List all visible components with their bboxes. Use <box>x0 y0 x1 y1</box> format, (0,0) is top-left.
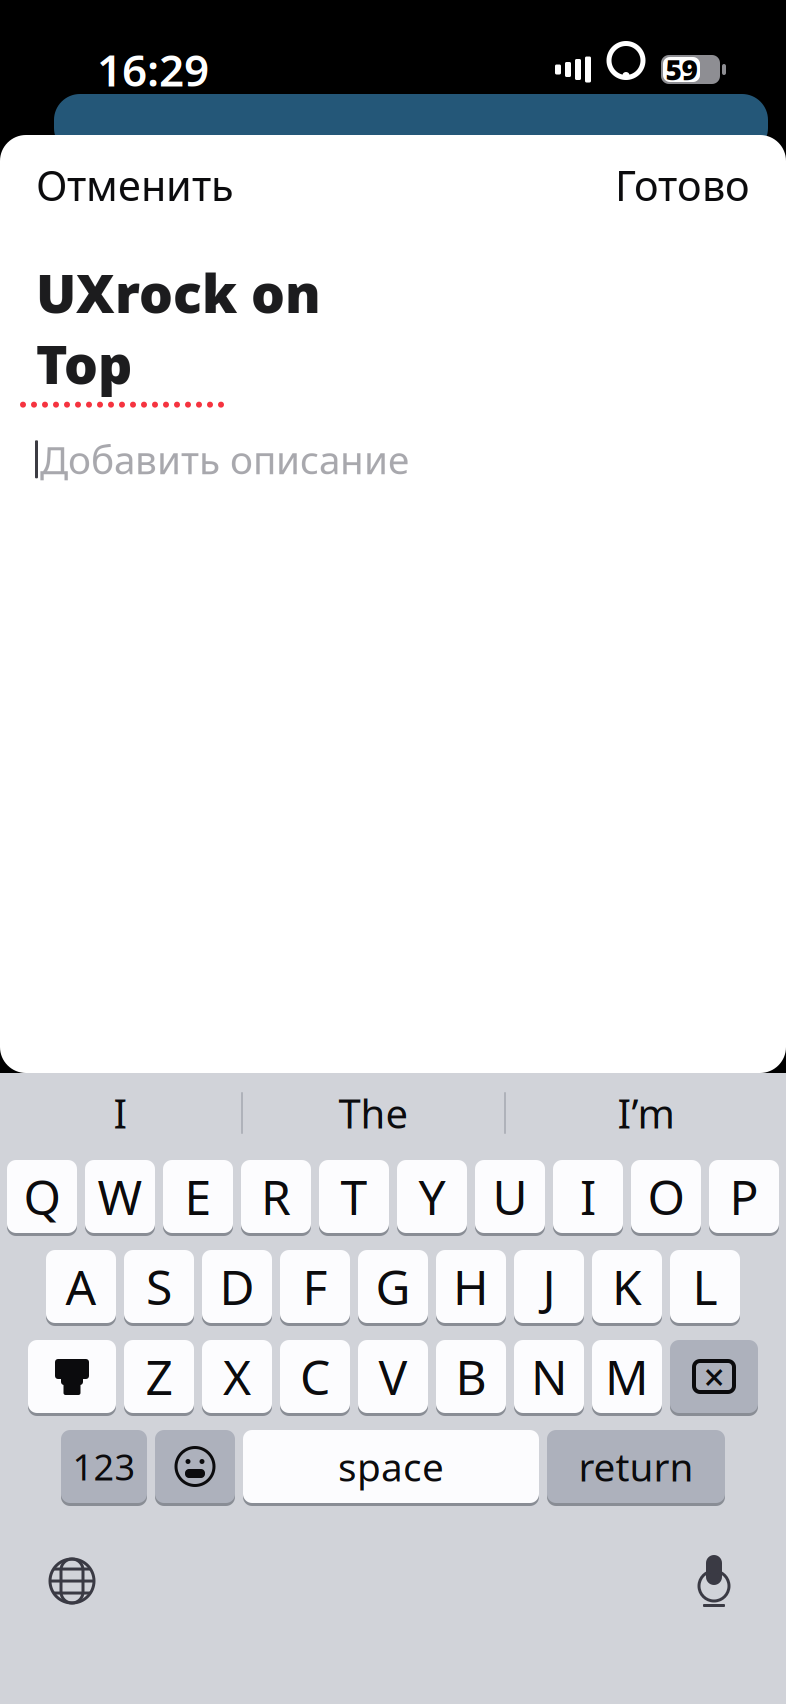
staticText: return <box>578 1441 693 1492</box>
staticText: × <box>703 1352 724 1401</box>
staticText: C <box>300 1345 330 1408</box>
staticText: Готово <box>615 158 750 212</box>
staticText: space <box>338 1441 444 1492</box>
button[interactable]: 123 <box>61 1430 147 1506</box>
button[interactable]: C <box>280 1340 350 1416</box>
staticText: 59 <box>665 51 697 88</box>
staticText: Добавить описание <box>40 434 409 485</box>
staticText: A <box>65 1255 96 1318</box>
staticText: The <box>338 1086 408 1139</box>
staticText: UXrock on Top <box>36 257 321 399</box>
button[interactable]: Z <box>124 1340 194 1416</box>
staticText: 16:29 <box>97 40 209 99</box>
staticText: I’m <box>617 1086 674 1139</box>
staticText: Y <box>418 1165 445 1228</box>
button[interactable]: T <box>319 1160 389 1236</box>
staticText: F <box>302 1255 327 1318</box>
staticText: S <box>146 1255 172 1318</box>
button[interactable]: E <box>163 1160 233 1236</box>
button[interactable]: Shift <box>28 1340 116 1416</box>
staticText: K <box>612 1255 642 1318</box>
button[interactable]: I <box>0 1073 241 1153</box>
button[interactable]: N <box>514 1340 584 1416</box>
button[interactable]: J <box>514 1250 584 1326</box>
staticText: P <box>729 1165 758 1228</box>
button[interactable]: Y <box>397 1160 467 1236</box>
button[interactable]: B <box>436 1340 506 1416</box>
button[interactable]: I’m <box>506 1073 786 1153</box>
staticText: Q <box>23 1165 60 1228</box>
staticText: N <box>531 1345 567 1408</box>
button[interactable]: Q <box>7 1160 77 1236</box>
button[interactable]: U <box>475 1160 545 1236</box>
button[interactable]: Отменить <box>0 144 270 226</box>
button[interactable]: Emoji <box>155 1430 235 1506</box>
staticText: X <box>223 1345 251 1408</box>
button[interactable]: R <box>241 1160 311 1236</box>
staticText: E <box>184 1165 211 1228</box>
button[interactable]: Next keyboard <box>24 1543 120 1619</box>
staticText: J <box>542 1255 555 1318</box>
staticText: U <box>492 1165 527 1228</box>
staticText: H <box>453 1255 489 1318</box>
button[interactable]: V <box>358 1340 428 1416</box>
button[interactable]: Delete <box>670 1340 758 1416</box>
button[interactable]: I <box>553 1160 623 1236</box>
button[interactable]: O <box>631 1160 701 1236</box>
staticText: L <box>692 1255 717 1318</box>
button[interactable]: P <box>709 1160 779 1236</box>
staticText: 123 <box>72 1443 135 1490</box>
button[interactable]: M <box>592 1340 662 1416</box>
staticText: Отменить <box>36 158 234 212</box>
staticText: O <box>647 1165 684 1228</box>
button[interactable]: D <box>202 1250 272 1326</box>
button[interactable]: W <box>85 1160 155 1236</box>
staticText: T <box>340 1165 367 1228</box>
staticText: I <box>113 1086 127 1139</box>
button[interactable]: L <box>670 1250 740 1326</box>
button[interactable]: The <box>243 1073 504 1153</box>
button[interactable]: H <box>436 1250 506 1326</box>
button[interactable]: K <box>592 1250 662 1326</box>
staticText: V <box>378 1345 407 1408</box>
button[interactable]: X <box>202 1340 272 1416</box>
staticText: G <box>375 1255 410 1318</box>
staticText: W <box>97 1165 142 1228</box>
button[interactable]: return <box>547 1430 725 1506</box>
button[interactable]: space <box>243 1430 539 1506</box>
staticText: D <box>219 1255 254 1318</box>
button[interactable]: Dictation <box>670 1545 758 1617</box>
staticText: Z <box>145 1345 172 1408</box>
staticText: R <box>261 1165 291 1228</box>
button[interactable]: F <box>280 1250 350 1326</box>
button[interactable]: G <box>358 1250 428 1326</box>
staticText: B <box>455 1345 486 1408</box>
staticText: I <box>580 1165 596 1228</box>
staticText: M <box>605 1345 649 1408</box>
button[interactable]: S <box>124 1250 194 1326</box>
button[interactable]: A <box>46 1250 116 1326</box>
button[interactable]: Готово <box>579 144 786 226</box>
